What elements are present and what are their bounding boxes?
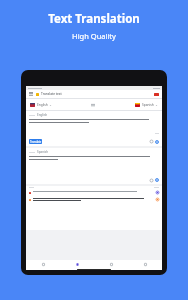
staticText: English [37,113,48,117]
button[interactable]: Spanish [134,102,159,108]
staticText: Text Translation [48,11,140,27]
button[interactable]: Swap languages [91,103,95,107]
button[interactable]: Result one [156,191,159,194]
button[interactable]: Settings [155,140,159,144]
button[interactable]: Result two [26,196,162,204]
button[interactable]: Translate [29,139,42,144]
button[interactable]: Result two [156,198,159,201]
staticText: High Quality [72,31,116,41]
button[interactable]: More [128,260,162,268]
staticText: Spanish [142,103,154,107]
staticText: English [37,103,48,107]
button[interactable]: Copy translation [150,179,153,182]
button[interactable]: Translate [60,260,94,268]
staticText: Translate text [41,92,62,96]
staticText: Spanish [37,150,49,154]
staticText: Translate [30,140,42,144]
button[interactable]: Keyboard [26,260,60,268]
button[interactable]: Menu [29,92,33,96]
button[interactable]: Copy [150,140,153,143]
button[interactable]: Camera [94,260,128,268]
button[interactable]: English [29,102,53,108]
button[interactable]: Result one [26,189,162,196]
button[interactable]: Share translation [155,178,159,182]
